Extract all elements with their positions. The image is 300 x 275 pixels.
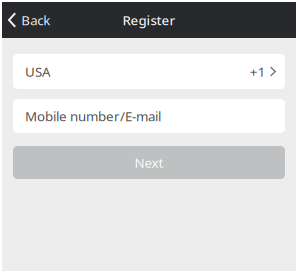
staticText: Mobile number/E-mail [25, 107, 161, 125]
staticText: Back [21, 11, 50, 29]
staticText: USA [25, 63, 51, 80]
button[interactable]: Mobile number/E-mail [13, 99, 285, 133]
staticText: +1 [250, 63, 266, 80]
staticText: Register [122, 11, 175, 29]
button[interactable]: Next [13, 146, 285, 179]
button[interactable]: USA [13, 54, 285, 89]
button[interactable]: Back [2, 2, 58, 38]
staticText: Next [134, 154, 163, 171]
